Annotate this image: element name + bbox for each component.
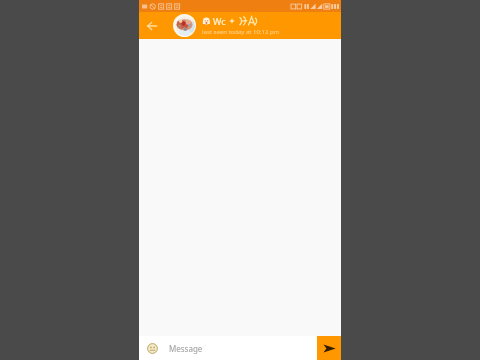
staticText: Message <box>169 343 203 354</box>
button[interactable]: Message <box>165 336 317 360</box>
staticText: Wc <box>213 15 226 27</box>
staticText: last seen today at 10:12 pm <box>202 28 280 36</box>
button[interactable]: Profile photo <box>173 14 196 37</box>
button[interactable]: Send <box>317 336 341 360</box>
button[interactable]: Wc <box>202 12 337 39</box>
button[interactable]: Emoji <box>139 336 165 360</box>
button[interactable]: Back <box>139 12 165 39</box>
